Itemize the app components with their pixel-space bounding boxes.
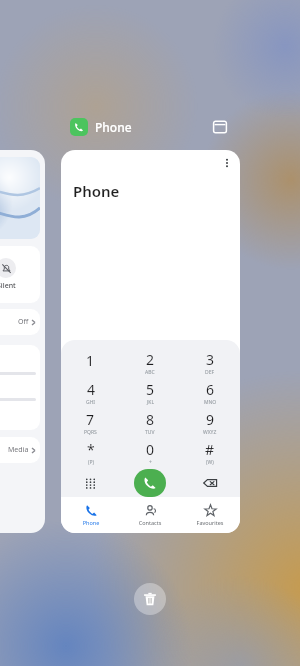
- staticText: #: [205, 440, 215, 459]
- staticText: Phone: [95, 119, 132, 135]
- staticText: 7: [86, 410, 95, 429]
- button[interactable]: Media: [0, 437, 40, 463]
- staticText: Phone: [74, 519, 108, 526]
- staticText: 1: [86, 351, 95, 370]
- staticText: Media: [8, 445, 29, 455]
- button[interactable]: More options: [219, 155, 235, 171]
- button[interactable]: #: [180, 438, 240, 468]
- staticText: 4: [87, 380, 96, 399]
- staticText: GHI: [86, 399, 96, 406]
- staticText: 2: [146, 350, 155, 369]
- button[interactable]: Phone: [61, 497, 120, 533]
- staticText: Favourites: [193, 519, 227, 526]
- button[interactable]: [0, 345, 40, 430]
- button[interactable]: Split screen: [211, 118, 229, 136]
- staticText: JKL: [147, 399, 155, 406]
- staticText: 3: [206, 350, 215, 369]
- staticText: DEF: [205, 369, 215, 376]
- button[interactable]: 7: [61, 408, 120, 438]
- staticText: PQRS: [84, 429, 97, 436]
- button[interactable]: 1: [61, 348, 120, 378]
- staticText: 0: [146, 440, 155, 459]
- button[interactable]: 5: [120, 378, 180, 408]
- button[interactable]: 8: [120, 408, 180, 438]
- staticText: Contacts: [133, 519, 167, 526]
- button[interactable]: Favourites: [180, 497, 240, 533]
- staticText: WXYZ: [203, 429, 217, 436]
- button[interactable]: Silent: [0, 150, 45, 533]
- button[interactable]: Backspace: [180, 469, 240, 497]
- button[interactable]: *: [61, 438, 120, 468]
- button[interactable]: [70, 118, 88, 136]
- staticText: TUV: [145, 429, 155, 436]
- button[interactable]: 3: [180, 348, 240, 378]
- staticText: *: [87, 440, 95, 459]
- button[interactable]: Silent: [0, 246, 40, 303]
- staticText: ABC: [145, 369, 155, 376]
- button[interactable]: Call: [134, 469, 166, 497]
- button[interactable]: More options: [61, 150, 240, 533]
- staticText: Phone: [73, 181, 120, 201]
- button[interactable]: Contacts: [120, 497, 180, 533]
- button[interactable]: Clear all: [134, 583, 166, 615]
- button[interactable]: 4: [61, 378, 120, 408]
- button[interactable]: Keypad: [61, 469, 120, 497]
- staticText: Off: [18, 317, 29, 327]
- button[interactable]: 2: [120, 348, 180, 378]
- staticText: (W): [206, 459, 214, 466]
- staticText: (P): [88, 459, 95, 466]
- button[interactable]: 6: [180, 378, 240, 408]
- button[interactable]: 9: [180, 408, 240, 438]
- staticText: 5: [146, 380, 155, 399]
- staticText: 9: [206, 410, 215, 429]
- staticText: 6: [206, 380, 215, 399]
- button[interactable]: 0: [120, 438, 180, 468]
- staticText: +: [149, 459, 152, 466]
- staticText: MNO: [204, 399, 217, 406]
- button[interactable]: Off: [0, 309, 40, 335]
- staticText: 8: [146, 410, 155, 429]
- staticText: Silent: [0, 281, 16, 291]
